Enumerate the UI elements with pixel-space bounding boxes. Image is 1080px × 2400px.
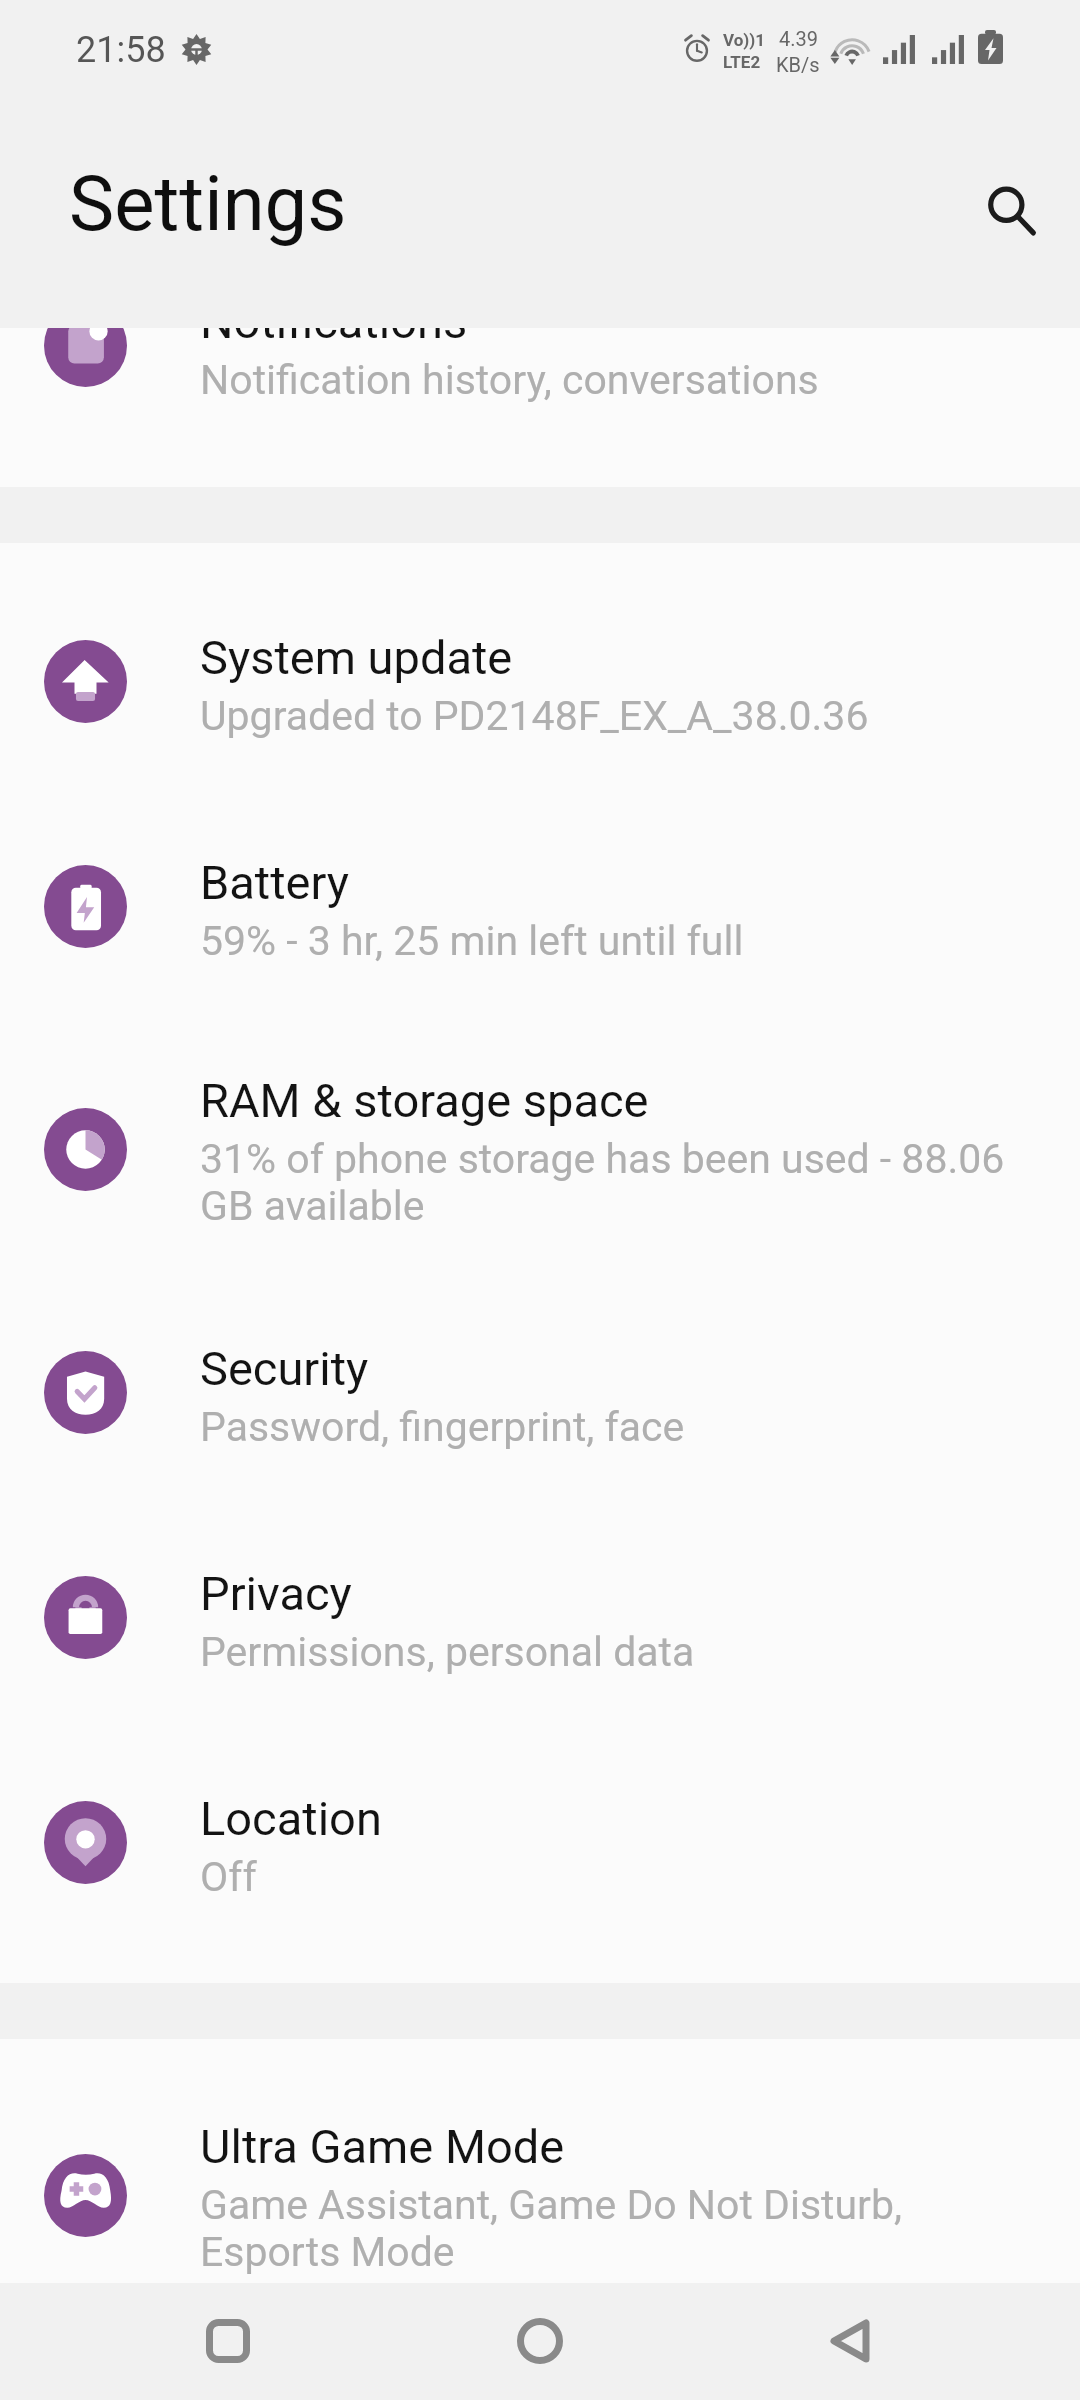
button[interactable]: Privacy [0,1506,1080,1731]
button[interactable]: RAM & storage space [0,1020,1080,1281]
staticText: Game Assistant, Game Do Not Disturb, Esp… [200,2181,1040,2276]
staticText: Notification history, conversations [200,356,1040,404]
staticText: 4.39 [779,27,818,50]
staticText: Privacy [200,1566,1040,1621]
staticText: 59% - 3 hr, 25 min left until full [200,917,1040,965]
staticText: Off [200,1853,1040,1901]
staticText: Password, fingerprint, face [200,1403,1040,1451]
button[interactable]: Location [0,1731,1080,1956]
staticText: 31% of phone storage has been used - 88.… [200,1135,1040,1230]
button[interactable]: System update [0,570,1080,795]
staticText: Security [200,1341,1040,1396]
staticText: System update [200,630,1040,685]
staticText: KB/s [776,53,820,76]
button[interactable]: Home [480,2291,600,2391]
staticText: Upgraded to PD2148F_EX_A_38.0.36 [200,692,1040,740]
button[interactable]: Recents [168,2291,288,2391]
staticText: RAM & storage space [200,1073,1040,1128]
button[interactable]: Back [790,2291,910,2391]
staticText: Ultra Game Mode [200,2119,1040,2174]
button[interactable]: Security [0,1281,1080,1506]
staticText: Battery [200,855,1040,910]
staticText: LTE2 [723,52,761,72]
staticText: Vo))1 [723,30,766,50]
staticText: Settings [69,159,347,248]
staticText: Notifications [200,328,1040,349]
button[interactable]: Notifications [0,328,1080,487]
button[interactable]: Battery [0,795,1080,1020]
staticText: Location [200,1791,1040,1846]
button[interactable]: Ultra Game Mode [0,2066,1080,2327]
button[interactable]: Search [969,168,1053,252]
staticText: Permissions, personal data [200,1628,1040,1676]
staticText: 21:58 [76,29,166,71]
